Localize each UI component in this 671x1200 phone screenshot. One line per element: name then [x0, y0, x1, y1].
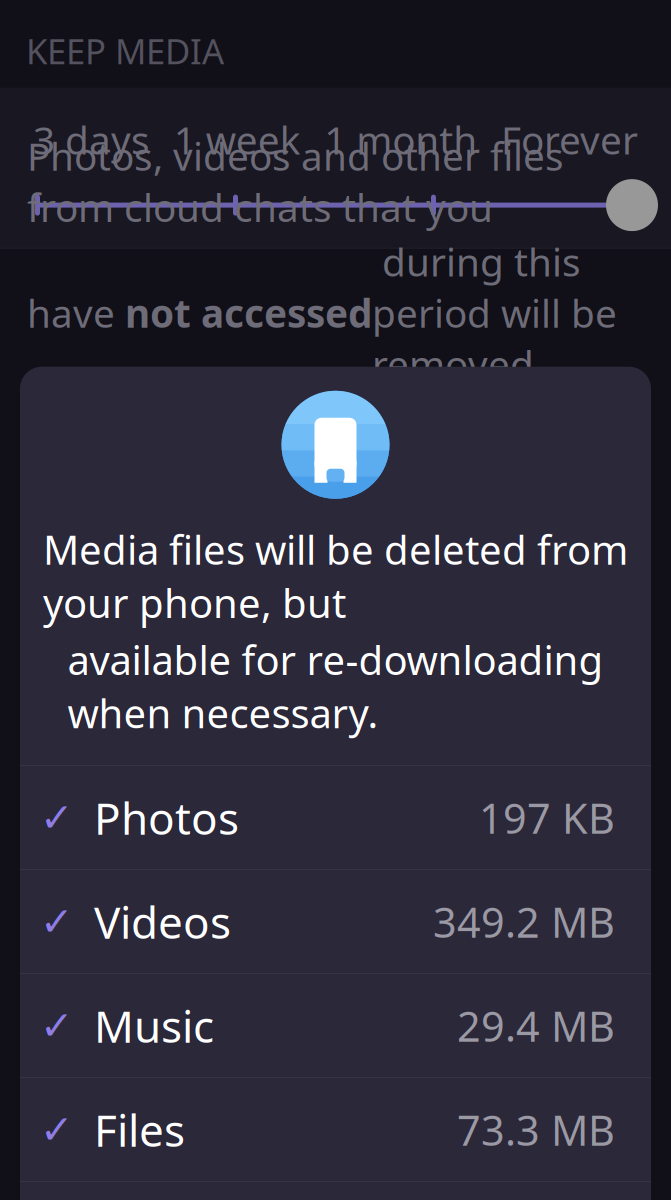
- staticText: 1 month: [324, 114, 477, 165]
- button[interactable]: ✓: [20, 870, 651, 973]
- staticText: Videos: [94, 892, 231, 951]
- staticText: 73.3 MB: [457, 1102, 615, 1157]
- staticText: during this period will be removed: [372, 236, 617, 390]
- staticText: Media files will be deleted from your ph…: [43, 523, 628, 629]
- staticText: Music: [94, 996, 214, 1055]
- staticText: Files: [94, 1100, 185, 1159]
- staticText: available for re-downloading when necess…: [67, 633, 603, 739]
- button[interactable]: ✓: [20, 766, 651, 869]
- staticText: Photos: [94, 788, 239, 847]
- button[interactable]: ✓: [20, 974, 651, 1077]
- staticText: ✓: [40, 1107, 74, 1152]
- button[interactable]: ✓: [20, 1078, 651, 1181]
- staticText: from this device to save disk space.: [27, 393, 541, 495]
- staticText: 3 days: [33, 114, 150, 165]
- staticText: KEEP MEDIA: [26, 28, 224, 74]
- staticText: Photos, videos and other files from clou…: [27, 130, 564, 233]
- staticText: 197 KB: [479, 790, 615, 845]
- staticText: 29.4 MB: [457, 998, 615, 1053]
- staticText: 349.2 MB: [433, 894, 615, 949]
- staticText: ✓: [40, 795, 74, 840]
- staticText: Forever: [501, 114, 638, 165]
- staticText: ✓: [40, 899, 74, 944]
- staticText: 1 week: [174, 114, 301, 165]
- staticText: have: [27, 287, 125, 338]
- staticText: not accessed: [125, 287, 372, 338]
- staticText: ✓: [40, 1003, 74, 1048]
